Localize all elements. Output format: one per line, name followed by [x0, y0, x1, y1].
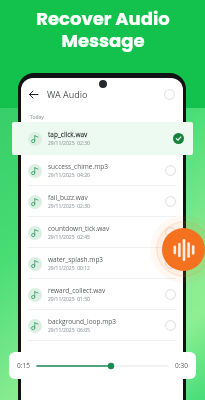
staticText: countdown_tick.wav — [48, 224, 110, 233]
button[interactable]: tap_click.wav — [21, 124, 183, 155]
staticText: fail_buzz.wav — [48, 193, 88, 202]
button[interactable]: tap_click.wav — [12, 122, 193, 155]
button[interactable]: Search — [161, 86, 177, 102]
staticText: success_chime.mp3 — [48, 162, 108, 171]
staticText: tap_click.wav — [48, 131, 88, 140]
staticText: reward_collect.wav — [48, 286, 106, 295]
staticText: background_loop.mp3 — [48, 317, 116, 326]
staticText: 29/11/2025 00:12 — [48, 265, 90, 272]
staticText: 29/11/2025 02:30 — [48, 141, 90, 148]
button[interactable]: Back — [25, 86, 41, 102]
button[interactable]: fail_buzz.wav — [21, 186, 183, 217]
button[interactable]: reward_collect.wav — [21, 279, 183, 310]
staticText: WA Audio — [47, 88, 88, 100]
staticText: Today — [30, 114, 44, 121]
staticText: 0:30 — [175, 361, 188, 370]
staticText: tap_click.wav — [48, 130, 88, 139]
staticText: Message — [61, 28, 145, 53]
button[interactable]: success_chime.mp3 — [21, 155, 183, 186]
staticText: 29/11/2025 02:45 — [48, 234, 90, 241]
staticText: 0:15 — [17, 361, 30, 370]
button[interactable]: Play audio — [162, 228, 205, 271]
staticText: 29/11/2025 01:50 — [48, 296, 90, 303]
staticText: 29/11/2025 02:30 — [48, 140, 90, 147]
button[interactable]: background_loop.mp3 — [21, 310, 183, 341]
staticText: water_splash.mp3 — [48, 255, 104, 264]
button[interactable]: water_splash.mp3 — [21, 248, 183, 279]
staticText: 29/11/2025 04:20 — [48, 172, 90, 179]
staticText: 29/11/2025 02:30 — [48, 203, 90, 210]
button[interactable]: countdown_tick.wav — [21, 217, 183, 248]
staticText: 29/11/2025 06:05 — [48, 327, 90, 334]
staticText: Recover Audio — [36, 6, 170, 31]
